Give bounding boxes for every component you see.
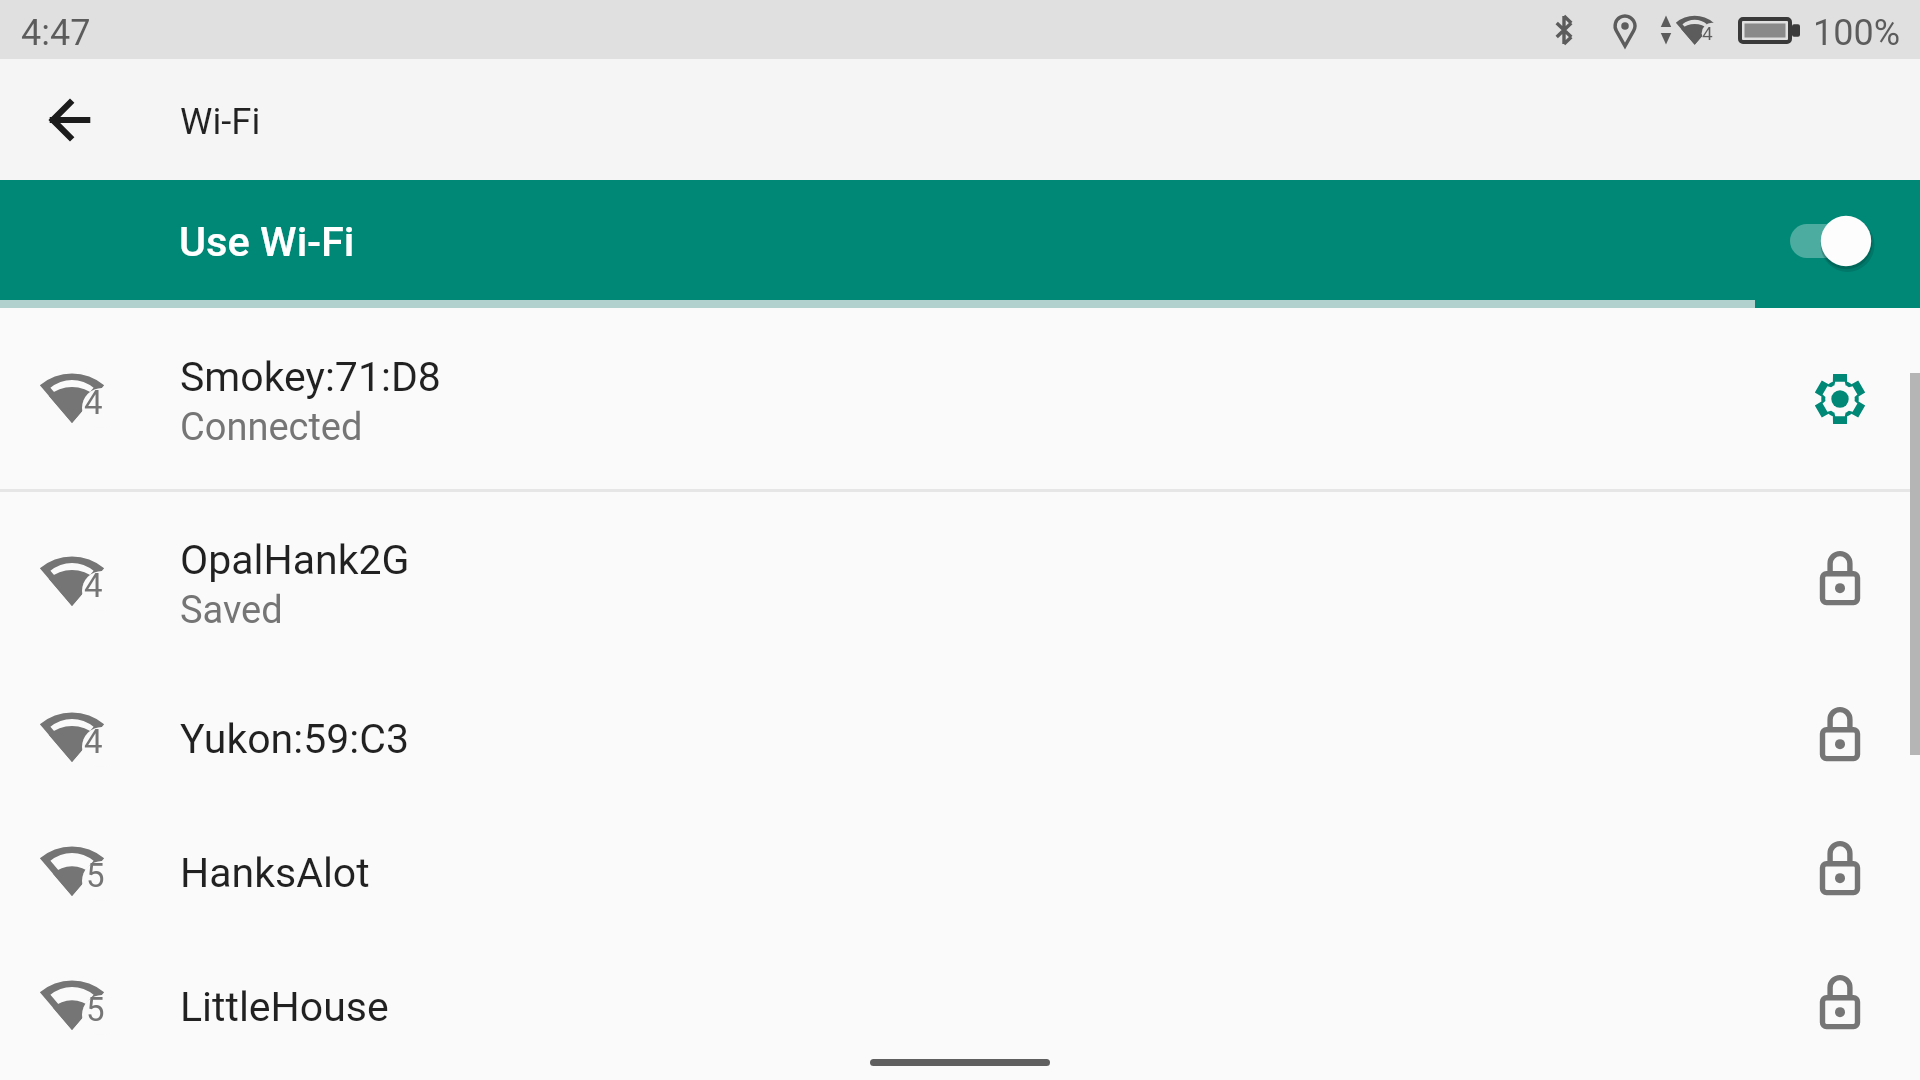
staticText: LittleHouse xyxy=(180,983,389,1031)
staticText: 4:47 xyxy=(21,12,91,54)
button[interactable]: 4 xyxy=(0,308,1920,489)
button[interactable]: 4 xyxy=(0,492,1920,671)
button[interactable]: Network settings xyxy=(1802,361,1878,437)
staticText: Use Wi-Fi xyxy=(179,217,355,266)
button[interactable]: Secured network xyxy=(1802,834,1878,910)
button[interactable]: Secured network xyxy=(1802,544,1878,620)
button[interactable]: 5 xyxy=(0,939,1920,1073)
button[interactable]: 5 xyxy=(0,805,1920,939)
staticText: Saved xyxy=(180,588,283,633)
staticText: OpalHank2G xyxy=(180,536,410,584)
staticText: 100% xyxy=(1813,12,1901,54)
staticText: Connected xyxy=(180,405,363,450)
button[interactable]: Secured network xyxy=(1802,700,1878,776)
staticText: Smokey:71:D8 xyxy=(180,353,441,401)
staticText: HanksAlot xyxy=(180,849,370,897)
staticText: 4 xyxy=(84,722,103,761)
staticText: 4 xyxy=(1702,22,1713,44)
staticText: 5 xyxy=(86,990,105,1029)
button[interactable]: Secured network xyxy=(1802,968,1878,1044)
button[interactable]: Use Wi-Fi toggle, on xyxy=(1742,200,1872,280)
staticText: Yukon:59:C3 xyxy=(180,715,409,763)
staticText: 4 xyxy=(84,383,103,422)
button[interactable]: Use Wi-Fi xyxy=(0,180,1920,300)
staticText: 5 xyxy=(86,856,105,895)
button[interactable]: Navigate up xyxy=(22,72,118,168)
staticText: 4 xyxy=(84,566,103,605)
staticText: Wi-Fi xyxy=(180,100,261,143)
button[interactable]: 4 xyxy=(0,671,1920,805)
